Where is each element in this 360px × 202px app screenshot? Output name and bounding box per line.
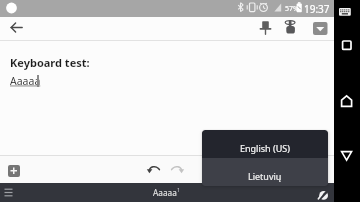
button[interactable] [255,17,276,40]
staticText: 57% [285,4,299,14]
button[interactable] [4,17,30,40]
button[interactable] [280,17,302,40]
staticText: English (US) [240,142,290,154]
button[interactable]: Lietuvių [202,158,328,186]
button[interactable] [168,161,185,178]
button[interactable] [338,37,356,53]
staticText: 1 [177,186,181,193]
staticText: Aaaaa [10,74,41,88]
button[interactable] [146,161,163,178]
button[interactable] [306,17,334,40]
staticText: Lietuvių [248,170,282,182]
button[interactable]: English (US) [202,130,328,158]
staticText: 19:37 [304,2,330,16]
staticText: Aaaaa [153,187,177,198]
button[interactable]: Aaaaa [135,183,195,202]
button[interactable] [8,165,20,177]
button[interactable] [338,5,356,19]
button[interactable] [338,147,356,164]
staticText: Keyboard test: [10,55,90,70]
button[interactable] [315,189,329,202]
button[interactable] [338,92,356,111]
